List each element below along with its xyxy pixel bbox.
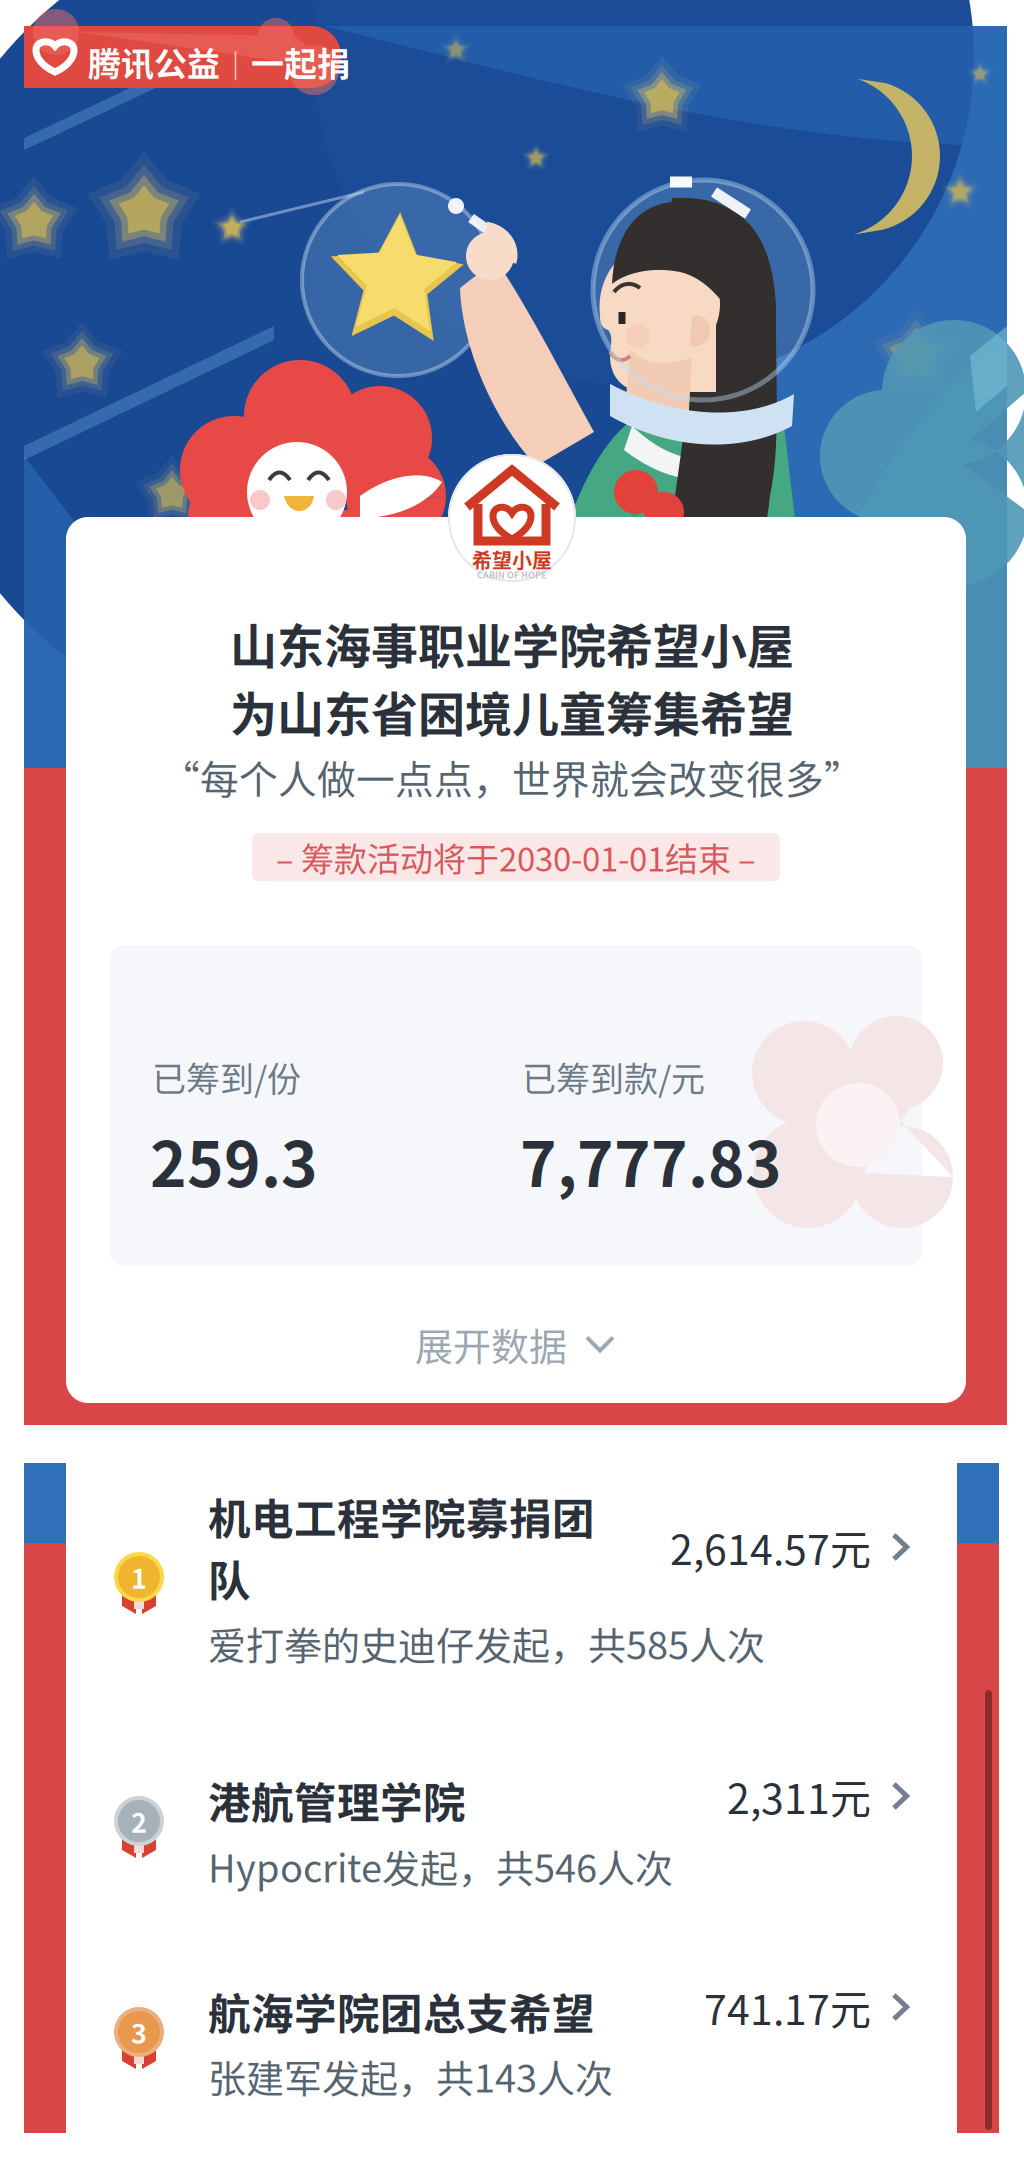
staticText: 259.3 bbox=[150, 1115, 318, 1205]
staticText: | bbox=[220, 43, 251, 81]
staticText: 2,311元 bbox=[727, 1766, 871, 1826]
staticText: 希望小屋 bbox=[472, 545, 552, 574]
staticText: 2 bbox=[131, 1801, 147, 1841]
staticText: 已筹到款/元 bbox=[522, 1052, 705, 1102]
staticText: 张建军发起，共143人次 bbox=[208, 2048, 613, 2103]
staticText: 腾讯公益 bbox=[88, 38, 220, 86]
staticText: 2,614.57元 bbox=[670, 1517, 871, 1577]
staticText: CABIN OF HOPE bbox=[477, 568, 547, 581]
staticText: 航海学院团总支希望 bbox=[208, 1980, 595, 2042]
staticText: 7,777.83 bbox=[520, 1115, 782, 1205]
staticText: 爱打拳的史迪仔发起，共585人次 bbox=[208, 1615, 765, 1670]
staticText: 港航管理学院 bbox=[208, 1769, 466, 1831]
staticText: 展开数据 bbox=[415, 1316, 567, 1371]
staticText: 为山东省困境儿童筹集希望 bbox=[230, 677, 794, 745]
staticText: Hypocrite发起，共546人次 bbox=[208, 1838, 673, 1893]
staticText: “每个人做一点点，世界就会改变很多” bbox=[161, 749, 863, 805]
staticText: 已筹到/份 bbox=[152, 1052, 301, 1102]
staticText: 741.17元 bbox=[704, 1977, 871, 2037]
button[interactable]: 展开数据 bbox=[66, 1292, 966, 1396]
staticText: 一起捐 bbox=[251, 38, 350, 86]
button[interactable]: 1 bbox=[0, 0, 1024, 2168]
button[interactable]: 3 bbox=[0, 0, 1024, 2168]
staticText: 队 bbox=[208, 1547, 251, 1609]
staticText: 机电工程学院募捐团 bbox=[208, 1485, 595, 1547]
staticText: 山东海事职业学院希望小屋 bbox=[230, 609, 794, 677]
button[interactable]: 2 bbox=[0, 0, 1024, 2168]
staticText: 3 bbox=[131, 2012, 147, 2052]
button[interactable]: 腾讯公益 一起捐 bbox=[24, 26, 341, 88]
staticText: 1 bbox=[131, 1557, 147, 1597]
staticText: – 筹款活动将于2030-01-01结束 – bbox=[276, 833, 756, 881]
